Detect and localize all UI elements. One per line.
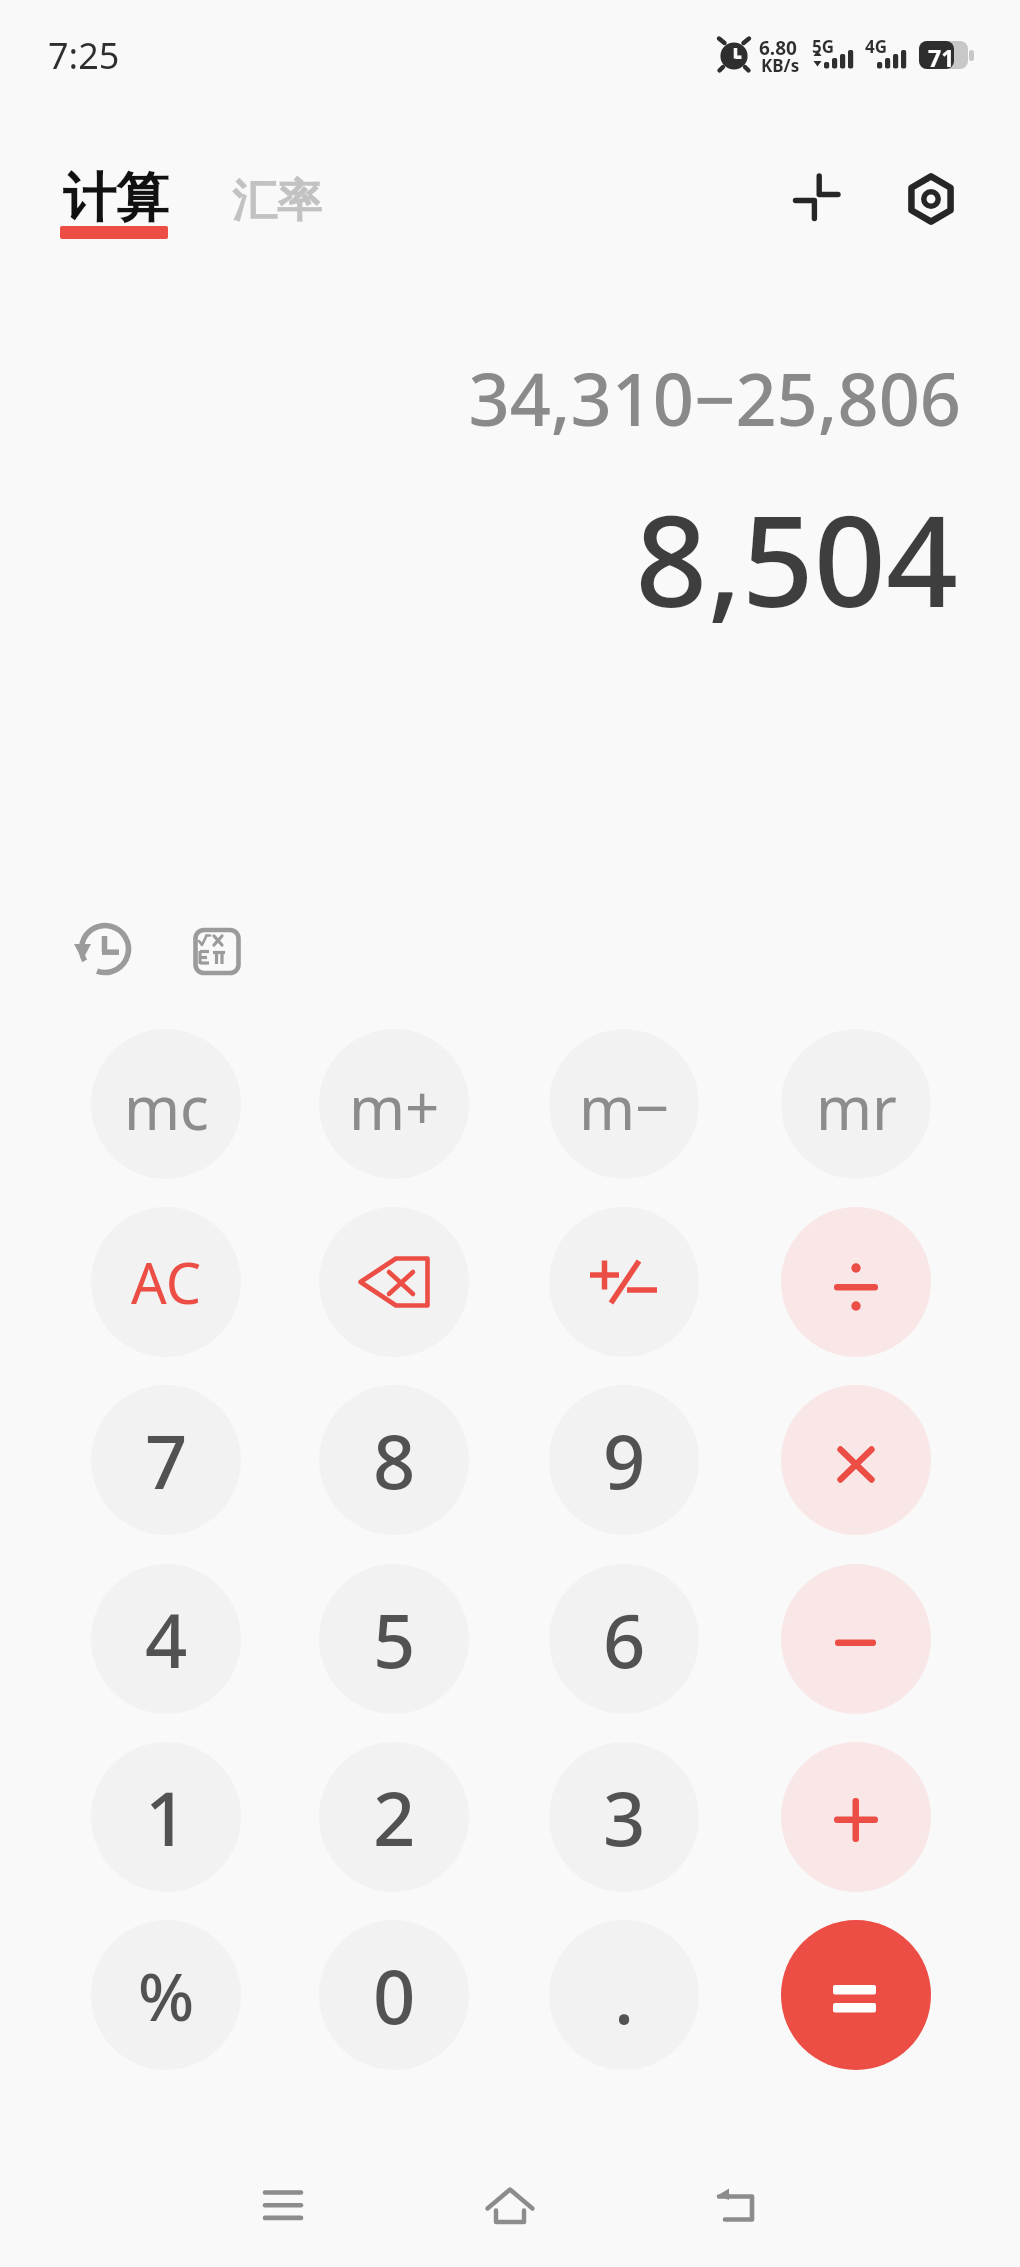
staticText: AC xyxy=(131,1244,202,1320)
button[interactable]: AC xyxy=(91,1207,241,1357)
staticText: 7:25 xyxy=(48,31,120,80)
staticText: m+ xyxy=(349,1066,440,1148)
button[interactable]: 7 xyxy=(91,1385,241,1535)
staticText: mr xyxy=(816,1066,897,1148)
button[interactable]: Home xyxy=(470,2167,550,2247)
button[interactable]: Delete xyxy=(319,1207,469,1357)
button[interactable]: Plus minus xyxy=(549,1207,699,1357)
button[interactable]: History xyxy=(69,913,141,985)
button[interactable]: mr xyxy=(781,1029,931,1179)
staticText: 2 xyxy=(373,1767,416,1868)
button[interactable]: Multiply xyxy=(781,1385,931,1535)
button[interactable]: 8 xyxy=(319,1385,469,1535)
button[interactable]: 1 xyxy=(91,1742,241,1892)
button[interactable]: m+ xyxy=(319,1029,469,1179)
button[interactable]: 4 xyxy=(91,1564,241,1714)
button[interactable]: Plus xyxy=(781,1742,931,1892)
staticText: 34,310−25,806 xyxy=(0,349,961,447)
staticText: 汇率 xyxy=(232,173,322,230)
button[interactable]: 计算 xyxy=(43,148,187,256)
button[interactable]: Collapse xyxy=(779,160,855,236)
button[interactable]: Minus xyxy=(781,1564,931,1714)
button[interactable]: Scientific mode xyxy=(180,914,252,986)
button[interactable]: 9 xyxy=(549,1385,699,1535)
button[interactable]: 3 xyxy=(549,1742,699,1892)
button[interactable]: Settings xyxy=(895,163,967,235)
staticText: 8 xyxy=(373,1410,416,1511)
button[interactable]: 2 xyxy=(319,1742,469,1892)
staticText: 9 xyxy=(603,1410,646,1511)
staticText: 7 xyxy=(145,1410,188,1511)
button[interactable]: mc xyxy=(91,1029,241,1179)
staticText: 6.80 xyxy=(759,35,797,61)
staticText: 计算 xyxy=(63,165,169,232)
staticText: 4 xyxy=(145,1589,188,1690)
button[interactable]: 0 xyxy=(319,1920,469,2070)
staticText: 6 xyxy=(603,1589,646,1690)
staticText: 1 xyxy=(145,1767,188,1868)
staticText: 71 xyxy=(928,42,955,73)
button[interactable]: Recent apps xyxy=(243,2167,323,2247)
button[interactable]: 5 xyxy=(319,1564,469,1714)
button[interactable]: . xyxy=(549,1920,699,2070)
staticText: 0 xyxy=(373,1945,416,2046)
staticText: 8,504 xyxy=(0,472,958,644)
button[interactable]: 汇率 xyxy=(212,152,338,244)
staticText: 4G xyxy=(865,35,888,58)
button[interactable]: Back xyxy=(697,2167,777,2247)
staticText: 5G xyxy=(812,35,835,58)
button[interactable]: m− xyxy=(549,1029,699,1179)
button[interactable]: 6 xyxy=(549,1564,699,1714)
staticText: 3 xyxy=(603,1767,646,1868)
staticText: m− xyxy=(579,1066,670,1148)
staticText: . xyxy=(614,1945,635,2046)
staticText: % xyxy=(138,1950,195,2040)
staticText: mc xyxy=(124,1066,209,1148)
button[interactable]: Equals xyxy=(781,1920,931,2070)
staticText: KB/s xyxy=(761,54,800,77)
button[interactable]: Divide xyxy=(781,1207,931,1357)
button[interactable]: % xyxy=(91,1920,241,2070)
staticText: 5 xyxy=(373,1589,416,1690)
